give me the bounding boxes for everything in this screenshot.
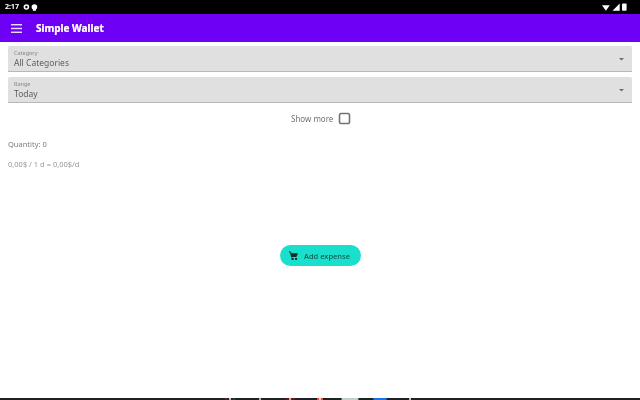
button[interactable]: Open navigation menu xyxy=(6,18,26,38)
button[interactable]: Photos xyxy=(310,398,330,400)
button[interactable]: Add expense xyxy=(280,245,361,266)
staticText: 0,00$ / 1 d = 0,00$/d xyxy=(8,159,80,169)
button[interactable]: All apps xyxy=(400,398,420,400)
button[interactable]: Range xyxy=(8,77,632,102)
staticText: All Categories xyxy=(14,57,69,69)
button[interactable]: Chrome xyxy=(250,398,270,400)
staticText: Quantity: 0 xyxy=(8,139,47,149)
staticText: Today xyxy=(14,88,38,100)
staticText: Add expense xyxy=(304,251,350,261)
staticText: Simple Wallet xyxy=(36,21,104,35)
button[interactable]: YouTube xyxy=(280,398,300,400)
staticText: Show more xyxy=(291,113,334,124)
button[interactable]: Messages xyxy=(370,398,390,400)
staticText: Range xyxy=(14,80,31,87)
staticText: Category xyxy=(14,49,38,56)
button[interactable]: Show more xyxy=(289,111,352,126)
button[interactable]: Gmail xyxy=(220,398,240,400)
staticText: 2:17 xyxy=(5,2,19,12)
button[interactable]: Category xyxy=(8,46,632,71)
button[interactable]: Drive xyxy=(340,398,360,400)
